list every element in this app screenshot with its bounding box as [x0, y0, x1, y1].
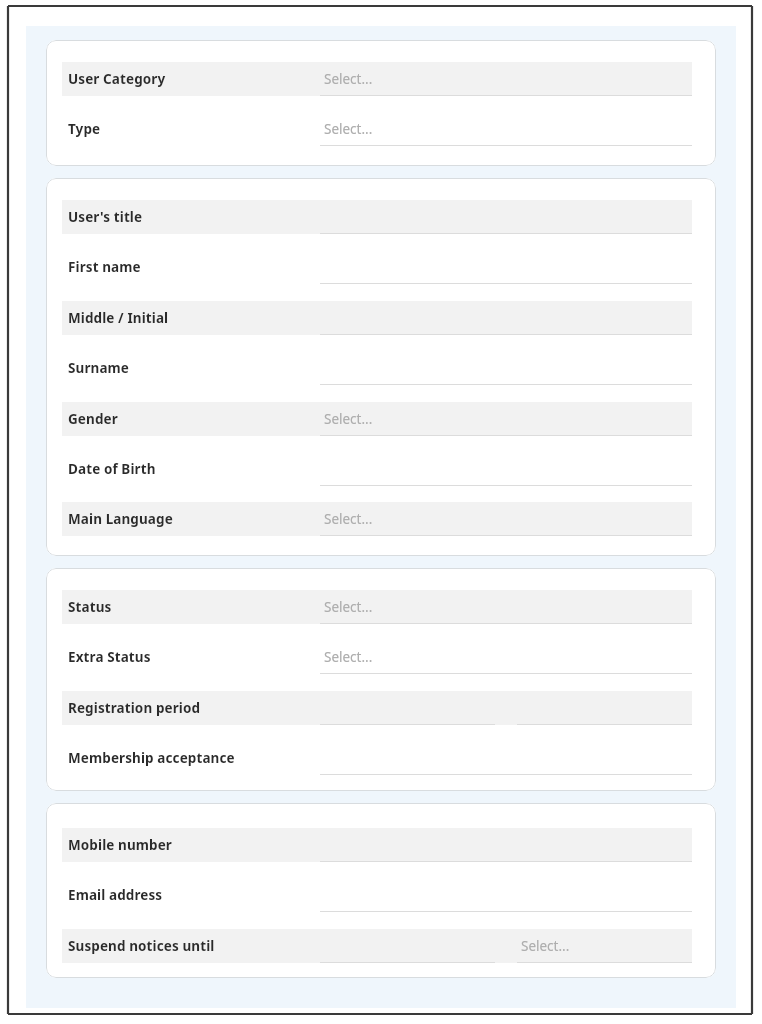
- staticText: Mobile number: [68, 836, 172, 854]
- button[interactable]: User's title: [62, 200, 692, 234]
- staticText: Select...: [324, 648, 373, 666]
- button[interactable]: Middle / Initial: [62, 301, 692, 335]
- staticText: Select...: [324, 70, 373, 88]
- button[interactable]: Membership acceptance: [62, 741, 692, 775]
- staticText: Select...: [324, 120, 373, 138]
- staticText: Select...: [324, 510, 373, 528]
- staticText: Surname: [68, 359, 130, 377]
- button[interactable]: Extra Status: [62, 640, 692, 674]
- button[interactable]: Main Language: [62, 502, 692, 536]
- staticText: Select...: [521, 937, 570, 955]
- button[interactable]: Suspend notices until: [62, 929, 692, 963]
- button[interactable]: User Category: [62, 62, 692, 96]
- button[interactable]: Email address: [62, 878, 692, 912]
- staticText: Middle / Initial: [68, 309, 169, 327]
- staticText: Status: [68, 598, 112, 616]
- staticText: Date of Birth: [68, 460, 156, 478]
- button[interactable]: Mobile number: [62, 828, 692, 862]
- staticText: User's title: [68, 208, 143, 226]
- button[interactable]: Type: [62, 112, 692, 146]
- staticText: User Category: [68, 70, 166, 88]
- staticText: First name: [68, 258, 141, 276]
- button[interactable]: Status: [62, 590, 692, 624]
- staticText: Select...: [324, 598, 373, 616]
- button[interactable]: Date of Birth: [62, 452, 692, 486]
- button[interactable]: First name: [62, 250, 692, 284]
- staticText: Email address: [68, 886, 163, 904]
- button[interactable]: Surname: [62, 351, 692, 385]
- staticText: Type: [68, 120, 101, 138]
- staticText: Select...: [324, 410, 373, 428]
- staticText: Membership acceptance: [68, 749, 235, 767]
- button[interactable]: Gender: [62, 402, 692, 436]
- staticText: Registration period: [68, 699, 201, 717]
- staticText: Extra Status: [68, 648, 151, 666]
- button[interactable]: Registration period: [62, 691, 692, 725]
- staticText: Suspend notices until: [68, 937, 215, 955]
- staticText: Main Language: [68, 510, 173, 528]
- staticText: Gender: [68, 410, 118, 428]
